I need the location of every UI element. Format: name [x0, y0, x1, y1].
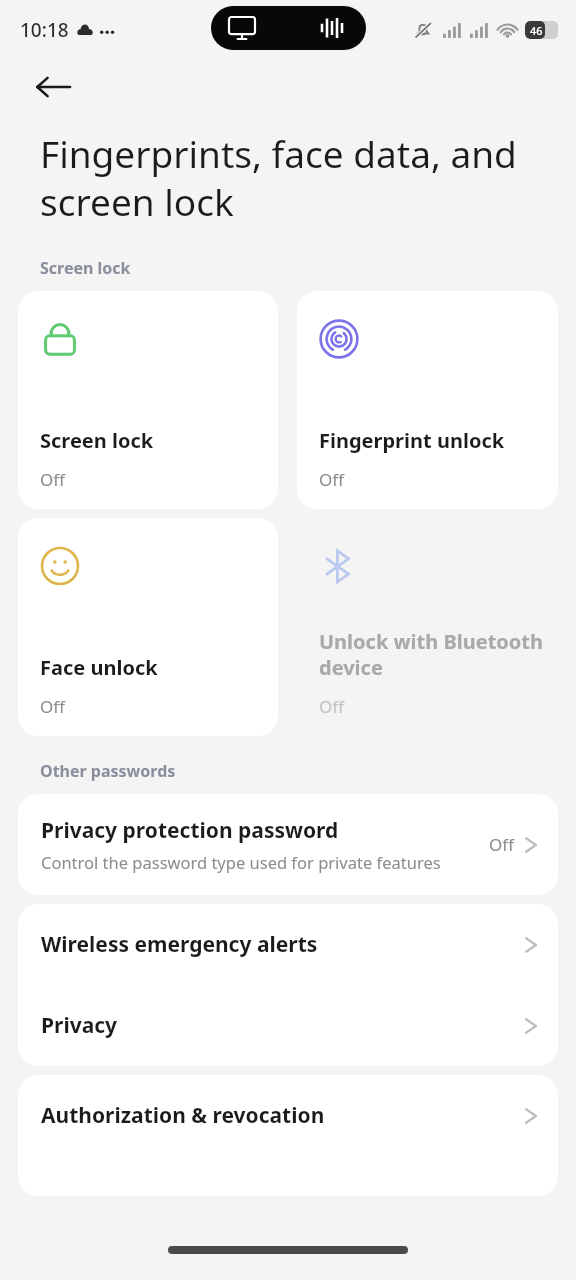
staticText: Face unlock — [40, 654, 158, 681]
button[interactable]: Face unlock — [18, 518, 278, 736]
staticText: Fingerprints, face data, and screen lock — [40, 128, 536, 227]
staticText: Authorization & revocation — [41, 1101, 524, 1130]
staticText: Other passwords — [40, 760, 176, 782]
staticText: Wireless emergency alerts — [41, 930, 524, 959]
button[interactable]: Privacy — [18, 985, 558, 1066]
button[interactable]: Back — [26, 60, 80, 114]
staticText: Off — [319, 695, 344, 718]
staticText: Privacy protection password — [41, 816, 339, 845]
button[interactable]: Fingerprint unlock — [297, 291, 558, 509]
staticText: Screen lock — [40, 257, 131, 279]
staticText: Control the password type used for priva… — [41, 851, 441, 873]
staticText: Off — [40, 695, 65, 718]
button[interactable]: Wireless emergency alerts — [18, 904, 558, 985]
button[interactable]: Authorization & revocation — [18, 1075, 558, 1156]
button[interactable]: Unlock with Bluetooth device — [297, 518, 558, 736]
staticText: Unlock with Bluetooth device — [319, 628, 544, 681]
staticText: Off — [489, 833, 514, 856]
staticText: 46 — [530, 23, 543, 38]
button[interactable]: Screen lock — [18, 291, 278, 509]
staticText: Fingerprint unlock — [319, 427, 505, 454]
staticText: Off — [40, 468, 65, 491]
button[interactable]: Privacy protection password — [18, 794, 558, 895]
staticText: Off — [319, 468, 344, 491]
staticText: 10:18 — [20, 17, 69, 43]
staticText: Privacy — [41, 1011, 524, 1040]
staticText: Screen lock — [40, 427, 154, 454]
